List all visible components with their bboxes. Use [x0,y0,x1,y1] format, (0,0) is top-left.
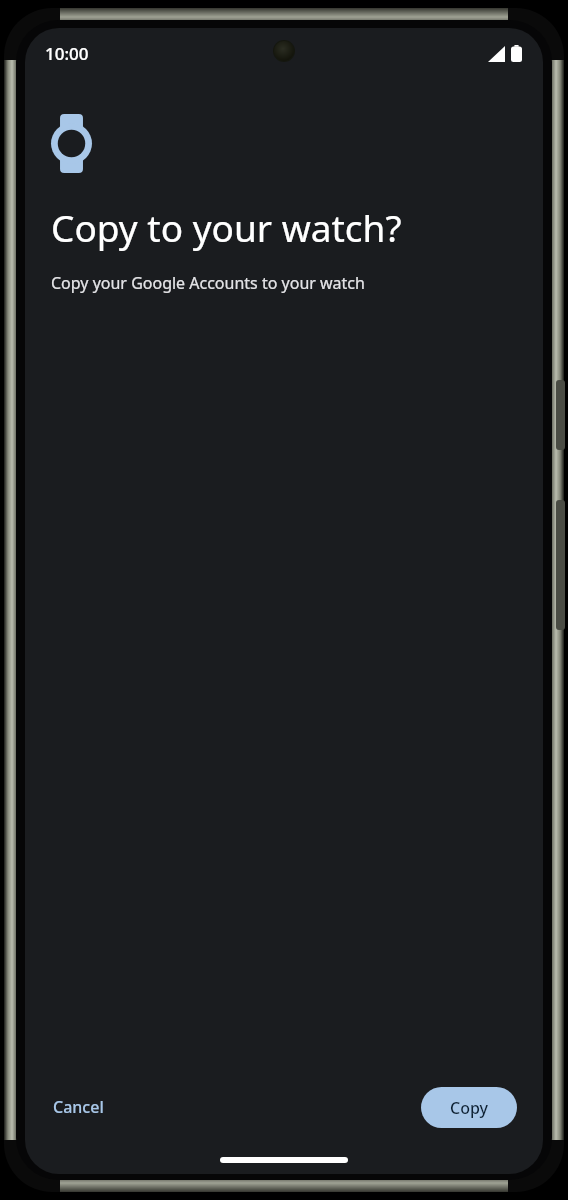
staticText: Copy [450,1097,488,1119]
staticText: 10:00 [45,42,89,65]
staticText: Cancel [53,1096,104,1118]
button[interactable]: Cancel [51,1086,106,1128]
staticText: Copy to your watch? [51,202,402,252]
staticText: Copy your Google Accounts to your watch [51,272,365,294]
other: Watch [51,114,92,173]
button[interactable]: Copy [421,1087,517,1128]
